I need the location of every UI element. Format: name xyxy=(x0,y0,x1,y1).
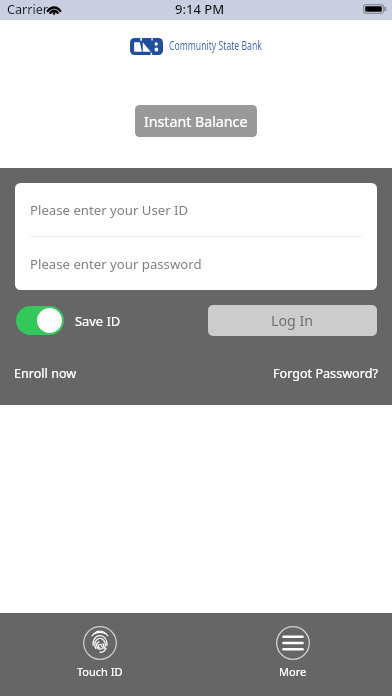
staticText: More xyxy=(279,664,307,679)
staticText: Touch ID xyxy=(77,664,123,679)
button[interactable]: Instant Balance xyxy=(135,105,257,137)
button[interactable]: Enroll now xyxy=(14,365,77,382)
staticText: Please enter your User ID xyxy=(30,201,189,219)
button[interactable]: More xyxy=(276,613,310,679)
staticText: Enroll now xyxy=(14,365,77,382)
staticText: 9:14 PM xyxy=(175,0,225,18)
staticText: Community State Bank xyxy=(169,37,263,53)
button[interactable]: Log In xyxy=(208,305,377,336)
button[interactable]: Save ID xyxy=(16,306,121,335)
staticText: Log In xyxy=(271,311,314,330)
button[interactable]: Please enter your User ID xyxy=(15,183,377,236)
staticText: Please enter your password xyxy=(30,255,202,273)
staticText: Save ID xyxy=(75,312,121,330)
staticText: Forgot Password? xyxy=(273,365,378,382)
staticText: Instant Balance xyxy=(144,112,248,131)
other: Touch ID xyxy=(83,626,117,660)
button[interactable]: Touch ID xyxy=(77,613,123,679)
staticText: Carrier xyxy=(7,1,48,18)
button[interactable]: Forgot Password? xyxy=(273,365,378,382)
button[interactable]: Please enter your password xyxy=(15,237,377,290)
other: More xyxy=(276,626,310,660)
